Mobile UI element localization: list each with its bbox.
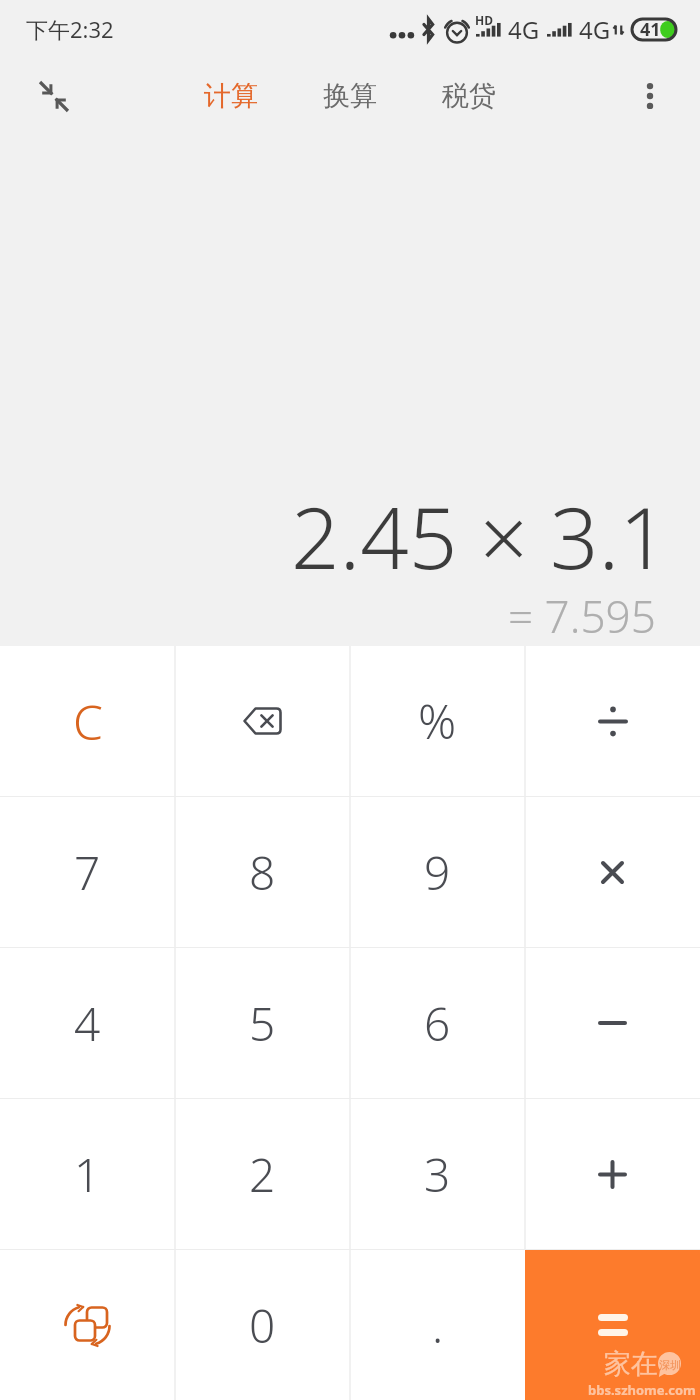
button[interactable]: More options [624, 70, 676, 122]
staticText: % [418, 689, 457, 753]
button[interactable]: Collapse [26, 68, 82, 124]
staticText: 税贷 [442, 79, 496, 113]
staticText: 4 [74, 992, 101, 1055]
staticText: 8 [249, 841, 276, 904]
staticText: 4G [579, 13, 611, 46]
staticText: = 7.595 [508, 586, 656, 636]
button[interactable]: 计算 [198, 69, 264, 123]
staticText: 41 [640, 17, 661, 42]
button[interactable]: 税贷 [436, 69, 502, 123]
button[interactable]: 5 [175, 948, 350, 1098]
button[interactable]: 6 [350, 948, 525, 1098]
staticText: 计算 [204, 79, 258, 113]
staticText: 7 [74, 841, 101, 904]
staticText: C [73, 689, 103, 754]
staticText: 6 [424, 992, 451, 1055]
button[interactable]: Plus [525, 1099, 700, 1249]
staticText: 9 [424, 841, 451, 904]
button[interactable]: 8 [175, 797, 350, 947]
staticText: 0 [249, 1294, 276, 1357]
staticText: 深圳 [659, 1358, 681, 1372]
staticText: 3 [424, 1143, 451, 1206]
button[interactable]: 2 [175, 1099, 350, 1249]
button[interactable]: 3 [350, 1099, 525, 1249]
button[interactable]: % [350, 646, 525, 796]
staticText: HD [475, 12, 493, 28]
staticText: 2 [249, 1143, 276, 1206]
button[interactable]: C [0, 646, 175, 796]
button[interactable]: 4 [0, 948, 175, 1098]
button[interactable]: Multiply [525, 797, 700, 947]
button[interactable]: Divide [525, 646, 700, 796]
staticText: 4G [508, 13, 540, 46]
staticText: bbs.szhome.com [588, 1381, 696, 1399]
button[interactable]: 换算 [317, 69, 383, 123]
button[interactable]: 0 [175, 1250, 350, 1400]
button[interactable]: Equals [525, 1250, 700, 1400]
button[interactable]: Backspace [175, 646, 350, 796]
staticText: 家在 [604, 1347, 658, 1381]
staticText: 换算 [323, 79, 377, 113]
button[interactable]: . [350, 1250, 525, 1400]
staticText: 5 [249, 992, 276, 1055]
staticText: 2.45 × 3.1 [291, 478, 668, 574]
button[interactable]: Convert [0, 1250, 175, 1400]
staticText: 1 [74, 1143, 101, 1206]
button[interactable]: 1 [0, 1099, 175, 1249]
button[interactable]: Minus [525, 948, 700, 1098]
staticText: 下午2:32 [26, 14, 114, 44]
staticText: . [432, 1294, 444, 1357]
button[interactable]: 7 [0, 797, 175, 947]
button[interactable]: 9 [350, 797, 525, 947]
